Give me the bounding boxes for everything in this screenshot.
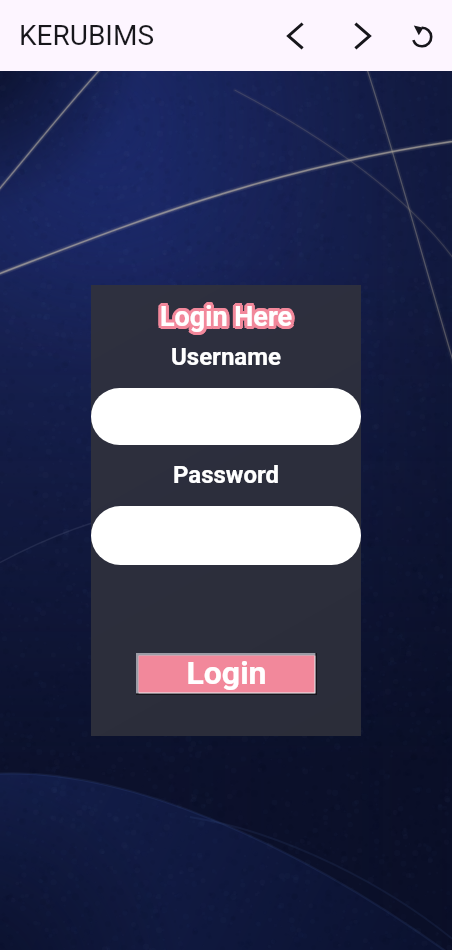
staticText: Login Here xyxy=(160,304,293,336)
staticText: Login Here xyxy=(157,301,290,333)
staticText: Login Here xyxy=(162,298,295,330)
staticText: Login Here xyxy=(160,298,293,330)
button[interactable]: Login xyxy=(136,653,317,695)
button[interactable]: Reload xyxy=(401,16,443,58)
button[interactable]: Forward xyxy=(342,15,384,57)
staticText: Login Here xyxy=(162,299,295,331)
staticText: Login Here xyxy=(162,303,295,335)
staticText: Password xyxy=(173,461,280,489)
button[interactable] xyxy=(91,388,361,445)
staticText: KERUBIMS xyxy=(19,19,155,52)
button[interactable]: Back xyxy=(274,15,316,57)
staticText: Username xyxy=(171,343,281,371)
staticText: Login Here xyxy=(163,301,296,333)
staticText: Login xyxy=(186,654,267,692)
staticText: Login Here xyxy=(163,303,296,335)
staticText: Login Here xyxy=(159,298,292,330)
staticText: Login Here xyxy=(158,303,291,335)
button[interactable] xyxy=(91,506,361,565)
staticText: Login Here xyxy=(157,300,290,332)
staticText: Login Here xyxy=(162,304,295,336)
staticText: Login Here xyxy=(160,301,293,333)
staticText: Login Here xyxy=(158,299,291,331)
staticText: Login Here xyxy=(163,300,296,332)
staticText: Login Here xyxy=(157,303,290,335)
staticText: Login Here xyxy=(159,304,292,336)
